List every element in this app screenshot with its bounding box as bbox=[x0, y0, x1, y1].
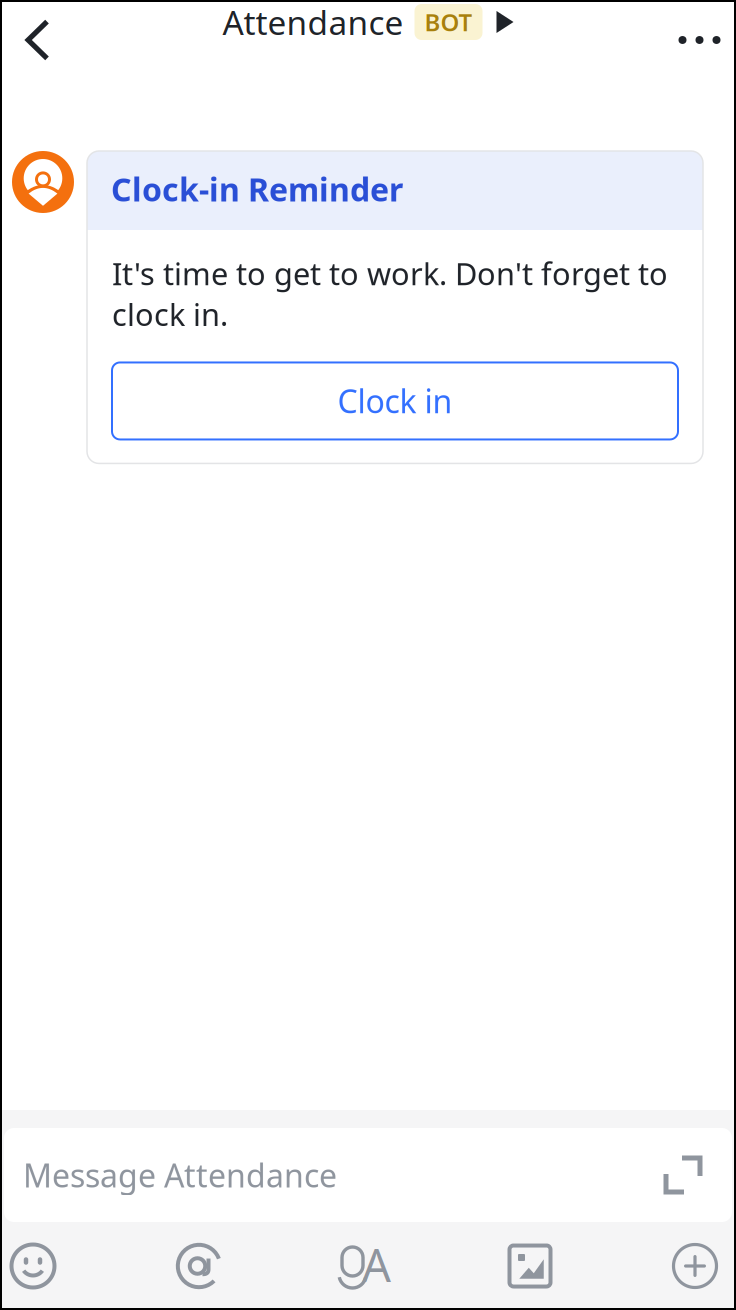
staticText: BOT bbox=[424, 6, 472, 38]
button[interactable]: Clock in bbox=[112, 362, 678, 439]
button[interactable]: Expand bbox=[663, 1128, 732, 1222]
staticText: Clock in bbox=[337, 380, 452, 422]
staticText: Attendance bbox=[222, 0, 403, 44]
button[interactable]: More bbox=[678, 0, 736, 80]
staticText: Message Attendance bbox=[23, 1154, 337, 1196]
staticText: Clock-in Reminder bbox=[111, 168, 403, 210]
button[interactable]: More options bbox=[612, 1222, 736, 1310]
button[interactable]: Emoji bbox=[0, 1222, 116, 1310]
staticText: A bbox=[362, 1234, 391, 1295]
button[interactable]: Voice to text bbox=[281, 1222, 446, 1310]
button[interactable]: Back bbox=[0, 0, 65, 80]
button[interactable]: Mention bbox=[116, 1222, 281, 1310]
button[interactable]: Message Attendance bbox=[4, 1128, 732, 1222]
staticText: It's time to get to work. Don't forget t… bbox=[112, 253, 668, 334]
button[interactable]: Attendance bbox=[222, 18, 513, 62]
button[interactable]: Photo bbox=[446, 1222, 612, 1310]
